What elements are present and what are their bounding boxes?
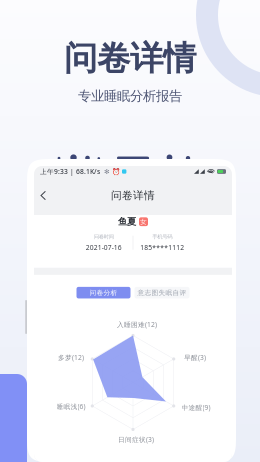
staticText: 早醒(3) [184,353,206,362]
staticText: 多梦(12) [58,353,84,362]
staticText: 日间症状(3) [118,435,154,444]
staticText: 问卷时间 [94,233,114,240]
button[interactable]: 意志图失眠自评 [134,287,189,298]
staticText: 入睡困难(12) [117,320,157,329]
staticText: 中途醒(9) [181,403,210,412]
staticText: 问卷分析 [89,289,117,297]
staticText: 女 [140,218,147,226]
staticText: 185****1112 [140,243,184,252]
button[interactable]: 返回 [36,186,50,205]
staticText: 问卷详情 [111,189,155,202]
staticText: 鱼夏 [118,216,136,227]
staticText: 2021-07-16 [86,243,122,252]
button[interactable]: 问卷分析 [76,287,130,298]
staticText: 专业睡眠分析报告 [78,88,182,104]
staticText: 上午9:33 | 68.1K/s [40,167,100,176]
staticText: 问卷详情 [64,38,196,79]
staticText: 睡眠浅(6) [56,402,85,411]
staticText: 意志图失眠自评 [137,289,186,297]
staticText: 手机号码 [152,233,172,240]
staticText: ✻ ⏰ [100,167,122,176]
